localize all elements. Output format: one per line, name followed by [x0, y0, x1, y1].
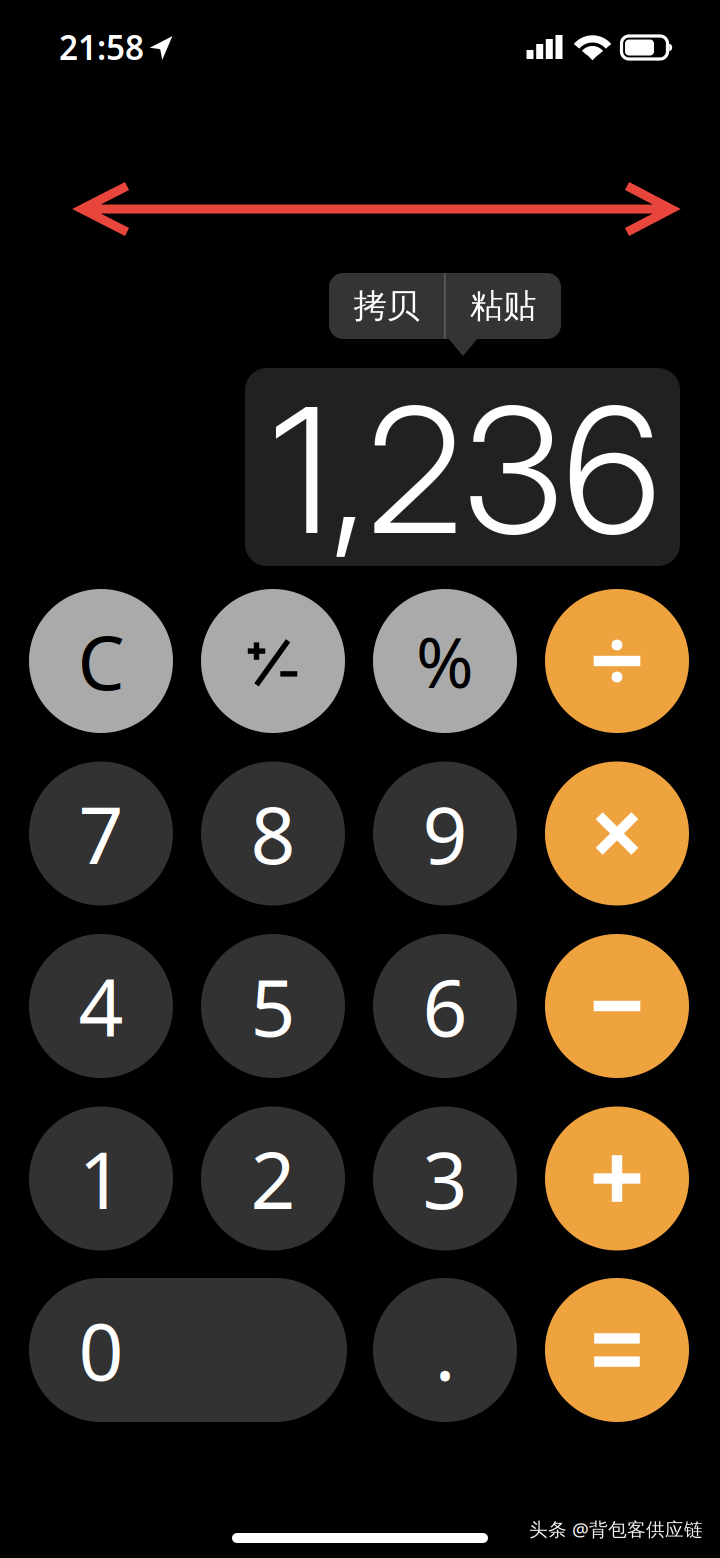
button[interactable]: 1 — [29, 1106, 173, 1250]
staticText: 5 — [250, 954, 295, 1058]
button[interactable]: 0 — [29, 1278, 347, 1422]
staticText: 1,236 — [271, 365, 661, 575]
button[interactable]: 3 — [373, 1106, 517, 1250]
staticText: 0 — [78, 1298, 123, 1402]
button[interactable]: Plus Minus — [201, 589, 345, 733]
staticText: 9 — [422, 781, 467, 886]
button[interactable]: 6 — [373, 934, 517, 1078]
button[interactable]: Percent — [373, 589, 517, 733]
staticText: 21:58 — [59, 25, 144, 69]
button[interactable]: 粘贴 — [445, 273, 561, 339]
button[interactable]: 2 — [201, 1106, 345, 1250]
button[interactable]: 9 — [373, 761, 517, 905]
staticText: 4 — [78, 954, 123, 1058]
staticText: 粘贴 — [470, 285, 536, 326]
button[interactable]: 5 — [201, 934, 345, 1078]
button[interactable]: Equals — [545, 1278, 689, 1422]
staticText: 头条 @背包客供应链 — [529, 1517, 703, 1541]
staticText: 1 — [78, 1126, 123, 1231]
button[interactable]: Subtract — [545, 934, 689, 1078]
staticText: C — [77, 611, 124, 711]
button[interactable]: Multiply — [545, 761, 689, 905]
button[interactable]: 7 — [29, 761, 173, 905]
button[interactable]: Add — [545, 1106, 689, 1250]
staticText: 6 — [422, 954, 467, 1058]
button[interactable]: Divide — [545, 589, 689, 733]
staticText: 7 — [78, 781, 123, 886]
staticText: 8 — [250, 781, 295, 886]
button[interactable]: Decimal point — [373, 1278, 517, 1422]
staticText: 拷贝 — [353, 285, 419, 326]
staticText: . — [434, 1298, 455, 1402]
button[interactable]: Clear — [29, 589, 173, 733]
staticText: % — [416, 615, 474, 707]
button[interactable]: 4 — [29, 934, 173, 1078]
staticText: 2 — [250, 1126, 295, 1231]
button[interactable]: 8 — [201, 761, 345, 905]
button[interactable]: 拷贝 — [329, 273, 444, 339]
staticText: 3 — [422, 1126, 467, 1231]
